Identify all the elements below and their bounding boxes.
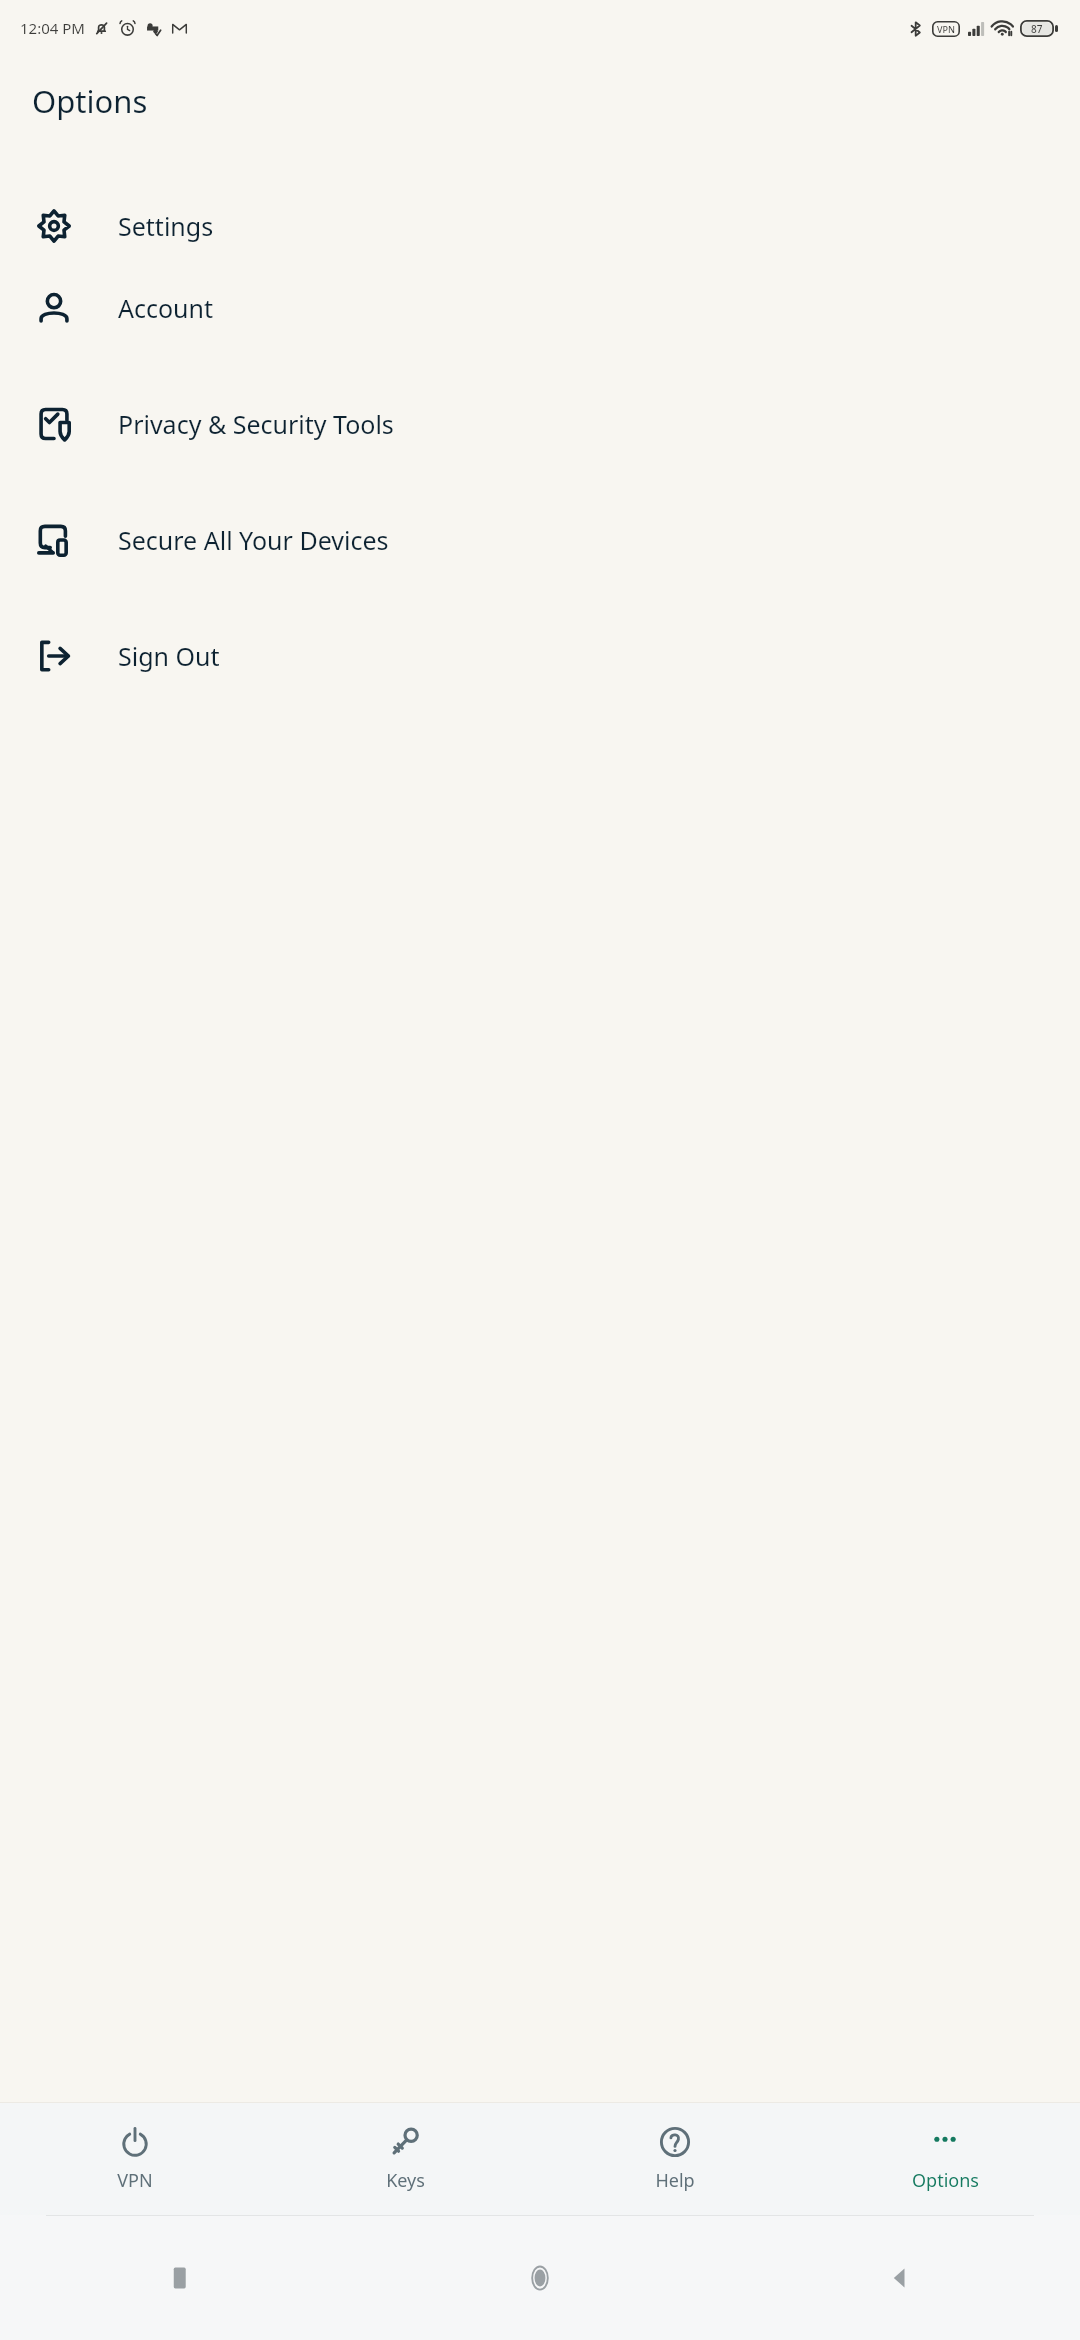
staticText: Privacy & Security Tools <box>118 407 394 441</box>
other: VPN <box>118 2125 152 2159</box>
other: Help <box>658 2125 692 2159</box>
other: Keys <box>388 2125 422 2159</box>
staticText: 12:04 PM <box>20 18 85 38</box>
button[interactable]: Keys <box>270 2119 540 2199</box>
button[interactable]: Help <box>540 2119 810 2199</box>
staticText: Secure All Your Devices <box>118 523 389 557</box>
button[interactable]: Recents <box>167 2265 193 2291</box>
staticText: 87 <box>1031 22 1043 36</box>
staticText: Sign Out <box>118 639 220 673</box>
other: Options <box>928 2125 962 2159</box>
staticText: VPN <box>937 23 956 35</box>
button[interactable]: Account <box>0 272 1080 344</box>
button[interactable]: Sign Out <box>0 620 1080 692</box>
staticText: Help <box>655 2168 695 2193</box>
button[interactable]: Home <box>523 2261 557 2295</box>
staticText: VPN <box>117 2168 153 2193</box>
button[interactable]: Settings <box>0 190 1080 262</box>
button[interactable]: Options <box>810 2119 1080 2199</box>
staticText: Options <box>912 2168 979 2193</box>
button[interactable]: VPN <box>0 2119 270 2199</box>
staticText: Options <box>32 80 148 122</box>
button[interactable]: Privacy & Security Tools <box>0 388 1080 460</box>
staticText: Account <box>118 291 214 325</box>
button[interactable]: Secure All Your Devices <box>0 504 1080 576</box>
staticText: Keys <box>386 2168 425 2193</box>
button[interactable]: Back <box>886 2264 914 2292</box>
staticText: Settings <box>118 209 214 243</box>
